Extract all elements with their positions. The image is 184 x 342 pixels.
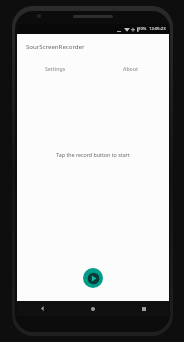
staticText: Settings [45,65,66,72]
button[interactable]: Start recording [83,268,103,288]
button[interactable]: Home [67,301,118,316]
button[interactable]: About [93,58,169,78]
staticText: Tap the record button to start [56,151,130,158]
button[interactable]: Recents [118,301,169,316]
staticText: SourScreenRecorder [26,42,85,50]
button[interactable]: Settings [17,58,93,78]
staticText: 10% [138,26,147,32]
staticText: About [123,65,139,72]
staticText: 12:05:23 [149,26,166,32]
button[interactable]: Back [17,301,67,316]
